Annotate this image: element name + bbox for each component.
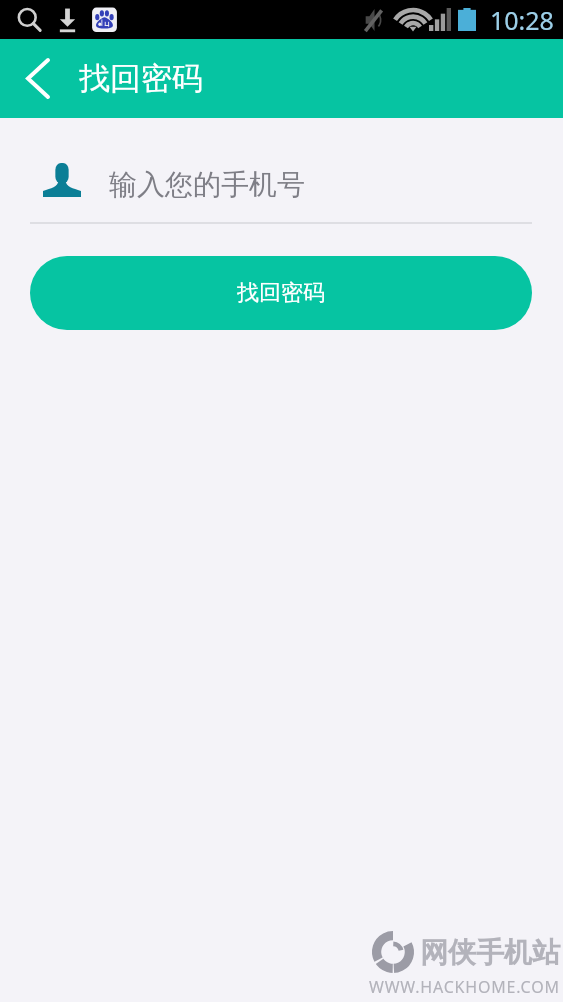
button[interactable]: 输入您的手机号	[30, 160, 532, 208]
staticText: WWW.HACKHOME.COM	[369, 976, 560, 998]
staticText: 网侠手机站	[420, 935, 560, 970]
button[interactable]: Back	[0, 39, 76, 118]
button[interactable]: 找回密码	[30, 256, 532, 330]
staticText: 找回密码	[237, 279, 325, 307]
staticText: 找回密码	[79, 59, 203, 98]
staticText: 10:28	[490, 3, 554, 37]
staticText: 输入您的手机号	[109, 167, 305, 202]
